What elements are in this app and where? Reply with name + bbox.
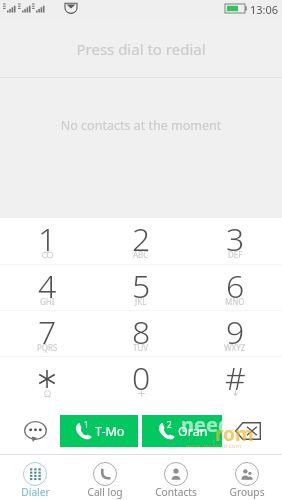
button[interactable]: Dialer	[0, 455, 70, 500]
staticText: No contacts at the moment	[0, 117, 282, 134]
button[interactable]: #	[188, 357, 282, 402]
button[interactable]	[0, 357, 94, 402]
staticText: JKL	[135, 296, 147, 307]
staticText: Dialer	[21, 485, 50, 499]
button[interactable]: 4	[0, 265, 94, 310]
staticText: DEF	[228, 249, 243, 260]
button[interactable]: Send message	[22, 420, 48, 442]
staticText: need	[181, 411, 231, 438]
staticText: 13:06	[250, 2, 279, 17]
button[interactable]: Backspace	[231, 419, 264, 443]
button[interactable]: 5	[94, 265, 188, 310]
staticText: Call log	[87, 485, 123, 499]
staticText: 3	[226, 217, 245, 261]
button[interactable]: 1	[60, 415, 138, 447]
staticText: 7	[38, 310, 57, 354]
staticText: 6	[226, 264, 245, 308]
staticText: rom	[215, 421, 254, 447]
staticText: 1	[38, 217, 57, 261]
staticText: 2	[132, 217, 151, 261]
button[interactable]: 2	[94, 218, 188, 264]
button[interactable]: 0	[94, 357, 188, 402]
staticText: MNO	[225, 296, 245, 307]
button[interactable]: 8	[94, 311, 188, 356]
button[interactable]: 2	[142, 415, 222, 447]
staticText: Press dial to redial	[0, 39, 282, 59]
button[interactable]: 6	[188, 265, 282, 310]
staticText: 4	[38, 264, 57, 308]
staticText: TUV	[133, 342, 149, 353]
staticText: 5	[132, 264, 151, 308]
button[interactable]: 7	[0, 311, 94, 356]
staticText: PQRS	[37, 342, 58, 353]
staticText: www.needrom.com	[186, 442, 242, 450]
button[interactable]: 3	[188, 218, 282, 264]
staticText: 8	[132, 310, 151, 354]
button[interactable]: Contacts	[140, 455, 211, 500]
staticText: 2	[167, 419, 172, 430]
staticText: #	[225, 356, 246, 400]
button[interactable]: 9	[188, 311, 282, 356]
staticText: 1	[84, 419, 89, 430]
staticText: 0	[132, 356, 151, 400]
staticText: Oran	[178, 423, 208, 440]
button[interactable]: Call log	[70, 455, 140, 500]
staticText: Contacts	[155, 485, 197, 499]
button[interactable]: Groups	[211, 455, 282, 500]
staticText: 9	[226, 310, 245, 354]
staticText: Groups	[229, 485, 265, 499]
staticText: WXYZ	[224, 342, 246, 353]
button[interactable]: 1	[0, 218, 94, 264]
staticText: T-Mo	[95, 423, 125, 440]
staticText: ABC	[133, 249, 149, 260]
staticText: GHI	[40, 296, 55, 307]
